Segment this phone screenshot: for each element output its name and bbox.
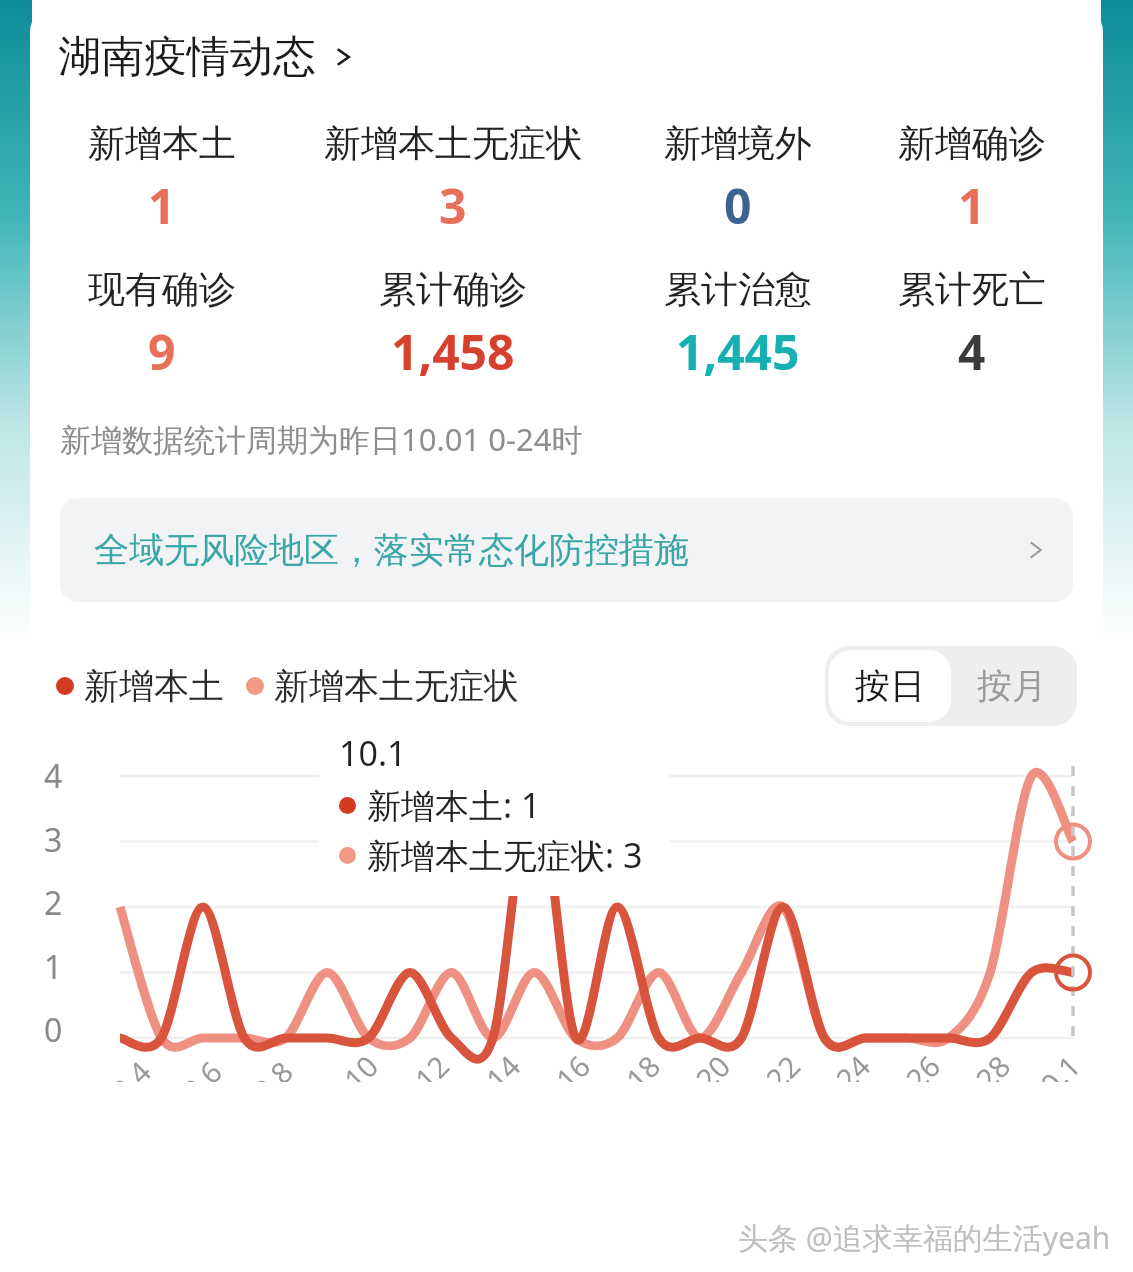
button[interactable]: 湖南疫情动态 xyxy=(30,30,1103,90)
button[interactable]: 全域无风险地区，落实常态化防控措施 xyxy=(60,498,1073,602)
staticText: 10.1 xyxy=(1020,1046,1088,1082)
staticText: 2 xyxy=(44,881,63,925)
staticText: 新增本土: 1 xyxy=(367,782,541,828)
staticText: 新增本土无症状: 3 xyxy=(367,832,643,878)
staticText: 新增本土 xyxy=(84,664,224,708)
staticText: 4 xyxy=(958,319,986,384)
staticText: 9.18 xyxy=(600,1046,668,1082)
staticText: 1,445 xyxy=(676,319,800,384)
staticText: 9.22 xyxy=(740,1046,808,1082)
staticText: 按日 xyxy=(855,664,925,708)
staticText: 9.28 xyxy=(950,1046,1018,1082)
staticText: 累计死亡 xyxy=(898,266,1046,313)
staticText: 0 xyxy=(724,173,752,238)
staticText: 新增境外 xyxy=(664,120,812,167)
staticText: 新增本土无症状 xyxy=(324,120,583,167)
staticText: 1 xyxy=(958,173,986,238)
staticText: 现有确诊 xyxy=(88,266,236,313)
staticText: 9 xyxy=(148,319,176,384)
staticText: 按月 xyxy=(977,664,1047,708)
staticText: 新增本土 xyxy=(88,120,236,167)
staticText: 3 xyxy=(44,818,63,862)
staticText: 新增数据统计周期为昨日10.01 0-24时 xyxy=(60,418,583,460)
button[interactable]: 按日 xyxy=(829,650,951,722)
staticText: 9.8 xyxy=(244,1052,301,1082)
staticText: 9.20 xyxy=(670,1046,738,1082)
staticText: 4 xyxy=(44,754,63,798)
staticText: 头条 @追求幸福的生活yeah xyxy=(738,1217,1111,1258)
staticText: 0 xyxy=(44,1008,63,1052)
staticText: 9.14 xyxy=(460,1046,528,1082)
staticText: 1 xyxy=(148,173,176,238)
staticText: 9.10 xyxy=(318,1046,386,1082)
staticText: 累计确诊 xyxy=(379,266,527,313)
staticText: 湖南疫情动态 xyxy=(58,30,316,84)
staticText: 9.12 xyxy=(389,1046,457,1082)
staticText: 9.26 xyxy=(880,1046,948,1082)
staticText: 1 xyxy=(44,945,63,989)
staticText: 9.4 xyxy=(102,1052,159,1082)
staticText: 10.1 xyxy=(339,730,407,776)
staticText: 新增确诊 xyxy=(898,120,1046,167)
staticText: 累计治愈 xyxy=(664,266,812,313)
staticText: 新增本土无症状 xyxy=(274,664,519,708)
button[interactable]: 按月 xyxy=(951,650,1073,722)
staticText: 9.24 xyxy=(810,1046,878,1082)
staticText: 9.6 xyxy=(173,1052,230,1082)
staticText: 3 xyxy=(439,173,467,238)
staticText: 全域无风险地区，落实常态化防控措施 xyxy=(94,528,689,572)
staticText: 9.16 xyxy=(530,1046,598,1082)
staticText: 1,458 xyxy=(391,319,515,384)
